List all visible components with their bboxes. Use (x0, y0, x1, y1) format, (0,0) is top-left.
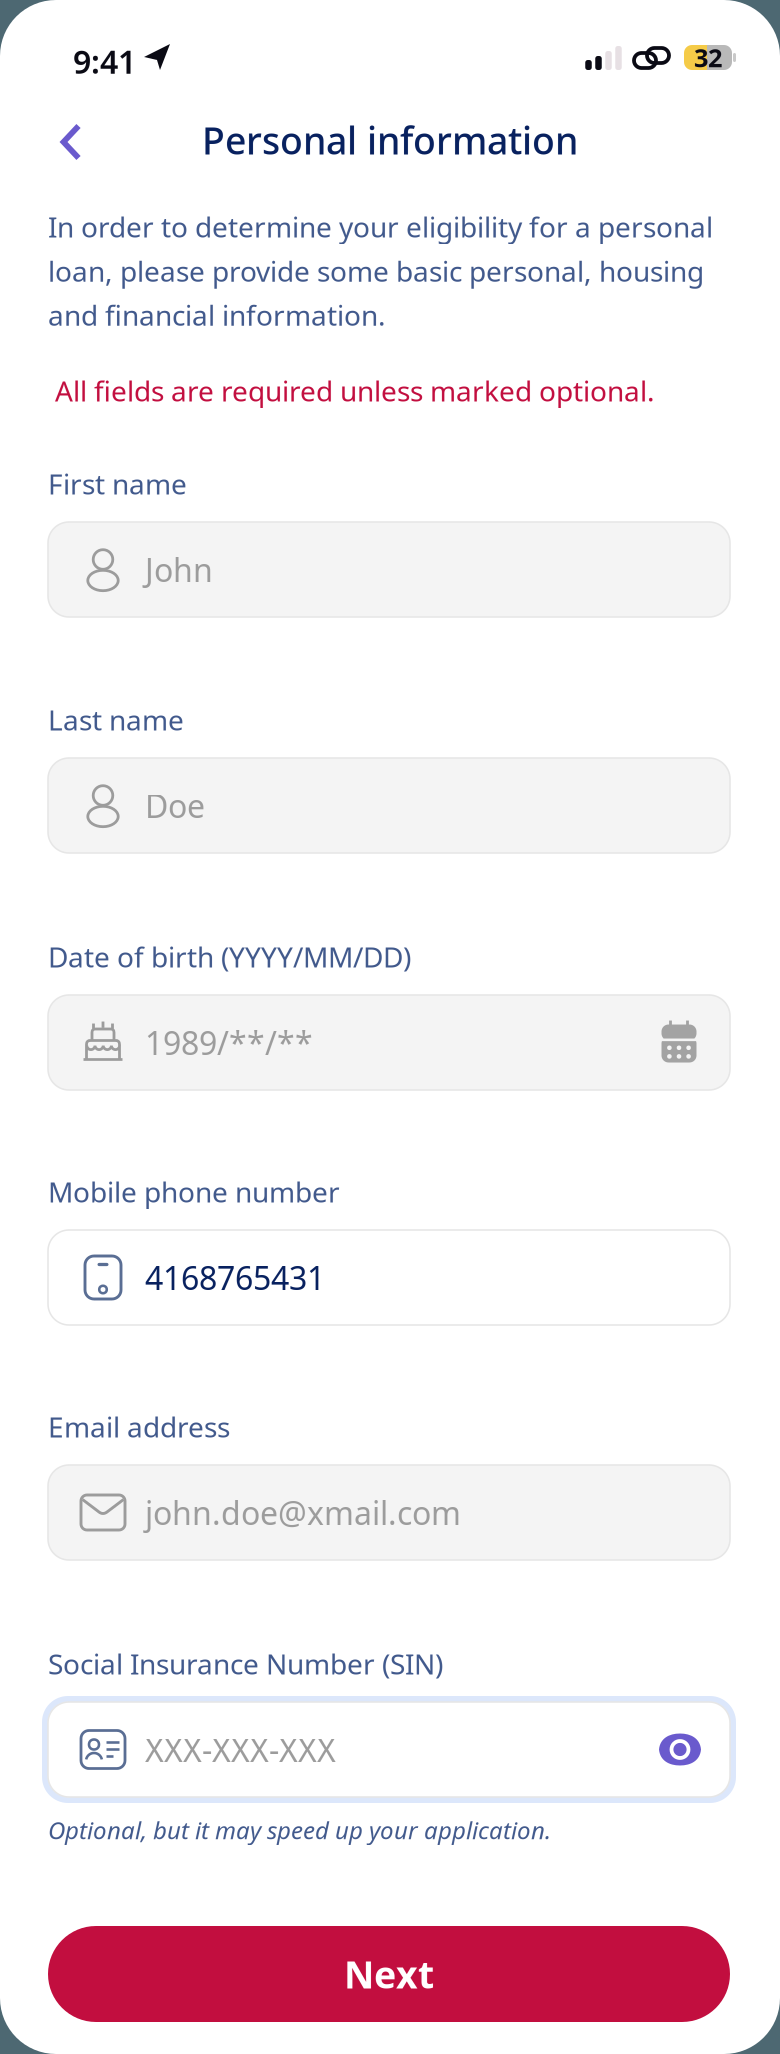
staticText: John (145, 548, 213, 591)
button[interactable]: Show SIN (654, 1719, 706, 1779)
staticText: XXX-XXX-XXX (145, 1728, 336, 1771)
staticText: 4168765431 (145, 1256, 325, 1299)
staticText: Last name (48, 701, 184, 738)
staticText: Mobile phone number (48, 1173, 340, 1210)
button[interactable]: Next (48, 1926, 730, 2022)
staticText: 9:41 (73, 40, 136, 82)
staticText: All fields are required unless marked op… (48, 372, 655, 409)
button[interactable]: Choose date (652, 1011, 706, 1073)
staticText: 32 (694, 41, 722, 74)
button[interactable]: Back (40, 110, 102, 174)
staticText: Doe (145, 784, 205, 827)
staticText: Optional, but it may speed up your appli… (48, 1814, 551, 1846)
staticText: Date of birth (YYYY/MM/DD) (48, 938, 411, 975)
staticText: In order to determine your eligibility f… (48, 208, 713, 333)
staticText: 1989/**/** (145, 1021, 313, 1064)
staticText: First name (48, 465, 187, 502)
staticText: Next (344, 1949, 434, 1999)
staticText: john.doe@xmail.com (145, 1491, 461, 1534)
staticText: Personal information (202, 115, 578, 165)
staticText: Email address (48, 1408, 230, 1445)
staticText: Social Insurance Number (SIN) (48, 1645, 443, 1682)
